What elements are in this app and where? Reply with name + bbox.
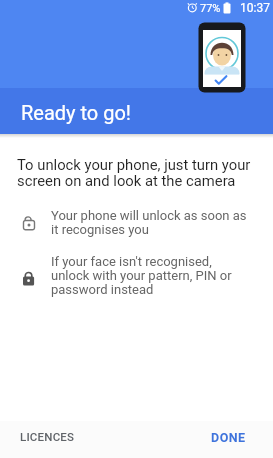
staticText: To unlock your phone, just turn your scr… — [17, 156, 251, 190]
staticText: Ready to go! — [21, 101, 132, 124]
staticText: DONE — [211, 430, 246, 445]
button[interactable]: LICENCES — [8, 423, 87, 450]
staticText: 77% — [200, 2, 221, 15]
staticText: If your face isn't recognised, unlock wi… — [51, 254, 232, 297]
staticText: 10:37 — [240, 1, 270, 15]
button[interactable]: DONE — [199, 423, 258, 452]
staticText: LICENCES — [20, 430, 75, 443]
staticText: Your phone will unlock as soon as it rec… — [51, 208, 247, 237]
